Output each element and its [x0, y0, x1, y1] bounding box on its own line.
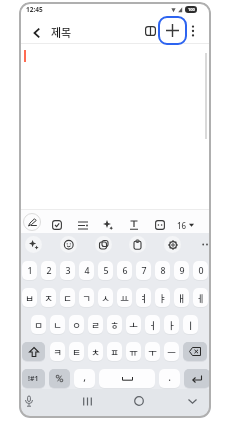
- button[interactable]: ㅛ: [117, 288, 132, 307]
- button[interactable]: [99, 216, 117, 234]
- staticText: ㅡ: [167, 345, 176, 359]
- button[interactable]: ㅓ: [145, 315, 160, 334]
- button[interactable]: ㅎ: [107, 315, 122, 334]
- button[interactable]: ㄷ: [60, 288, 75, 307]
- button[interactable]: ㅣ: [183, 315, 198, 334]
- staticText: ㅅ: [101, 291, 110, 305]
- button[interactable]: ㅌ: [69, 342, 84, 361]
- button[interactable]: ㅗ: [126, 315, 141, 334]
- button[interactable]: [95, 236, 112, 253]
- button[interactable]: ㅍ: [107, 342, 122, 361]
- staticText: 제목: [51, 24, 72, 40]
- button[interactable]: ㅅ: [98, 288, 113, 307]
- staticText: 2: [46, 265, 52, 277]
- staticText: ㅗ: [129, 318, 138, 332]
- button[interactable]: [31, 27, 42, 38]
- button[interactable]: ㅡ: [164, 342, 179, 361]
- button[interactable]: [151, 216, 169, 234]
- staticText: 5: [103, 265, 109, 277]
- button[interactable]: ㅇ: [69, 315, 84, 334]
- staticText: ㅠ: [129, 345, 138, 359]
- button[interactable]: ㅕ: [136, 288, 151, 307]
- button[interactable]: [184, 369, 210, 388]
- staticText: ㅂ: [25, 291, 34, 305]
- staticText: ㅓ: [148, 318, 157, 332]
- staticText: ㅈ: [44, 291, 53, 305]
- button[interactable]: ㅈ: [41, 288, 56, 307]
- staticText: 7: [141, 265, 147, 277]
- button[interactable]: [164, 236, 181, 253]
- button[interactable]: ㅊ: [88, 342, 103, 361]
- button[interactable]: [198, 236, 211, 253]
- staticText: 6: [122, 265, 128, 277]
- button[interactable]: .: [159, 369, 180, 388]
- staticText: ㅍ: [110, 345, 119, 359]
- button[interactable]: [22, 394, 36, 408]
- button[interactable]: ㅔ: [193, 288, 208, 307]
- staticText: ㅑ: [158, 291, 167, 305]
- staticText: ㅐ: [177, 291, 186, 305]
- button[interactable]: 9: [174, 261, 189, 280]
- button[interactable]: ㄱ: [79, 288, 94, 307]
- button[interactable]: [48, 216, 66, 234]
- button[interactable]: 5: [98, 261, 113, 280]
- button[interactable]: [183, 342, 207, 361]
- button[interactable]: ㅑ: [155, 288, 170, 307]
- button[interactable]: 6: [117, 261, 132, 280]
- button[interactable]: [186, 24, 199, 37]
- staticText: ㄴ: [53, 318, 62, 332]
- button[interactable]: [131, 393, 147, 409]
- button[interactable]: 4: [79, 261, 94, 280]
- staticText: ㅇ: [72, 318, 81, 332]
- staticText: ㅔ: [196, 291, 205, 305]
- button[interactable]: ㅐ: [174, 288, 189, 307]
- staticText: ㅛ: [120, 291, 129, 305]
- button[interactable]: ㄴ: [50, 315, 65, 334]
- button[interactable]: ,: [74, 369, 95, 388]
- button[interactable]: ㄹ: [88, 315, 103, 334]
- staticText: 9: [179, 265, 185, 277]
- button[interactable]: [79, 393, 95, 409]
- staticText: 12:45: [26, 5, 43, 14]
- button[interactable]: [22, 342, 45, 361]
- button[interactable]: ㅠ: [126, 342, 141, 361]
- staticText: ㅜ: [148, 345, 157, 359]
- button[interactable]: [158, 16, 187, 45]
- staticText: ㄱ: [82, 291, 91, 305]
- staticText: .: [168, 370, 171, 384]
- button[interactable]: ㅂ: [22, 288, 37, 307]
- button[interactable]: [143, 24, 157, 38]
- button[interactable]: [129, 236, 146, 253]
- button[interactable]: 8: [155, 261, 170, 280]
- button[interactable]: 3: [60, 261, 75, 280]
- staticText: 3: [65, 265, 71, 277]
- button[interactable]: [125, 216, 143, 234]
- button[interactable]: 7: [136, 261, 151, 280]
- button[interactable]: ㅏ: [164, 315, 179, 334]
- button[interactable]: [49, 369, 70, 388]
- button[interactable]: [184, 393, 200, 409]
- button[interactable]: 1: [22, 261, 37, 280]
- staticText: 4: [84, 265, 90, 277]
- button[interactable]: 0: [193, 261, 208, 280]
- staticText: ㅣ: [186, 318, 195, 332]
- button[interactable]: [23, 213, 41, 231]
- staticText: ㅎ: [110, 318, 119, 332]
- button[interactable]: [99, 369, 155, 388]
- staticText: ㅁ: [34, 318, 43, 332]
- button[interactable]: ㅋ: [50, 342, 65, 361]
- staticText: 1: [27, 265, 33, 277]
- button[interactable]: [74, 216, 92, 234]
- button[interactable]: 16: [177, 216, 194, 234]
- staticText: ㅋ: [53, 345, 62, 359]
- button[interactable]: ㅁ: [31, 315, 46, 334]
- button[interactable]: [25, 236, 42, 253]
- button[interactable]: ㅜ: [145, 342, 160, 361]
- staticText: !#1: [28, 374, 39, 384]
- staticText: ㅏ: [167, 318, 176, 332]
- button[interactable]: 2: [41, 261, 56, 280]
- button[interactable]: !#1: [22, 369, 45, 388]
- staticText: ㄷ: [63, 291, 72, 305]
- button[interactable]: [60, 236, 77, 253]
- staticText: 16: [177, 220, 187, 231]
